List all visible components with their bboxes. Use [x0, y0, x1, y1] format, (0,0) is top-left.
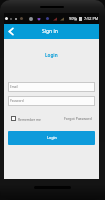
button[interactable]: Remember me — [11, 115, 41, 122]
button[interactable]: Forgot Password — [64, 115, 92, 122]
staticText: Login — [47, 135, 57, 140]
staticText: Login — [45, 52, 58, 58]
staticText: 90% — [69, 16, 77, 21]
staticText: Sign in — [42, 28, 58, 35]
button[interactable]: Navigate up — [4, 24, 18, 39]
staticText: Forgot Password — [64, 116, 92, 121]
button[interactable]: Login — [8, 131, 95, 145]
staticText: Email — [10, 85, 18, 89]
staticText: Remember me — [18, 117, 41, 121]
staticText: Password — [10, 99, 24, 103]
button[interactable]: Password — [8, 96, 95, 106]
button[interactable]: Email — [8, 82, 95, 92]
staticText: 7:52 PM — [84, 16, 99, 21]
